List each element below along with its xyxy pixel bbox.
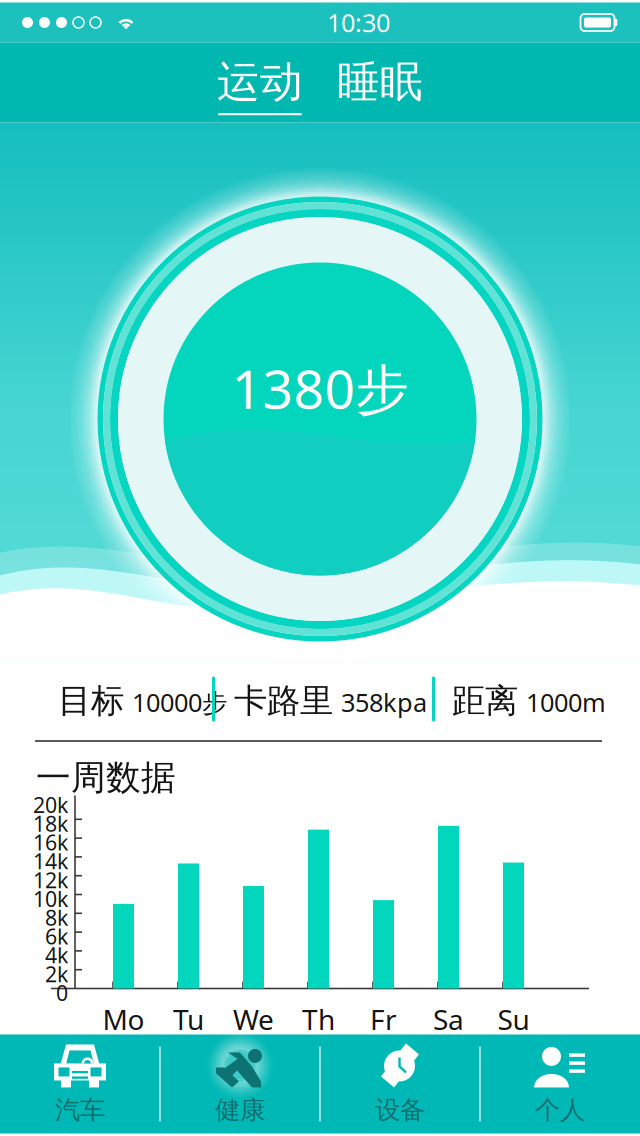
- staticText: 16k: [33, 828, 68, 856]
- staticText: 0: [56, 978, 68, 1007]
- staticText: 设备: [375, 1094, 425, 1125]
- staticText: 8k: [45, 903, 68, 932]
- staticText: Tu: [173, 1000, 204, 1038]
- staticText: 卡路里: [234, 680, 333, 721]
- staticText: 14k: [33, 847, 68, 875]
- staticText: 一周数据: [36, 756, 176, 799]
- button[interactable]: 汽车: [0, 1034, 160, 1133]
- staticText: 18k: [33, 809, 68, 838]
- button[interactable]: 健康: [160, 1034, 320, 1133]
- staticText: Sa: [433, 1000, 464, 1038]
- staticText: 汽车: [55, 1094, 105, 1125]
- staticText: 睡眠: [337, 56, 423, 108]
- staticText: 2k: [45, 960, 68, 988]
- staticText: 6k: [45, 922, 68, 950]
- staticText: 4k: [45, 941, 68, 969]
- staticText: 运动: [217, 56, 303, 108]
- button[interactable]: 设备: [320, 1034, 480, 1133]
- staticText: 1000m: [526, 685, 606, 719]
- staticText: 目标: [58, 680, 124, 721]
- staticText: 1380步: [231, 353, 408, 423]
- staticText: 12k: [33, 866, 68, 894]
- staticText: We: [233, 1000, 274, 1038]
- button[interactable]: 个人: [480, 1034, 640, 1133]
- staticText: Fr: [370, 1000, 397, 1038]
- staticText: 10000步: [132, 685, 227, 719]
- staticText: 健康: [215, 1094, 265, 1125]
- button[interactable]: 睡眠: [333, 56, 427, 115]
- staticText: 10k: [33, 884, 68, 913]
- staticText: Su: [497, 1000, 529, 1038]
- staticText: 10:30: [327, 6, 390, 39]
- staticText: 20k: [33, 790, 68, 819]
- staticText: 358kpa: [341, 685, 427, 719]
- button[interactable]: 运动: [213, 56, 307, 115]
- staticText: Mo: [102, 1000, 144, 1038]
- staticText: Th: [302, 1000, 335, 1038]
- staticText: 距离: [452, 680, 518, 721]
- staticText: 个人: [535, 1094, 585, 1125]
